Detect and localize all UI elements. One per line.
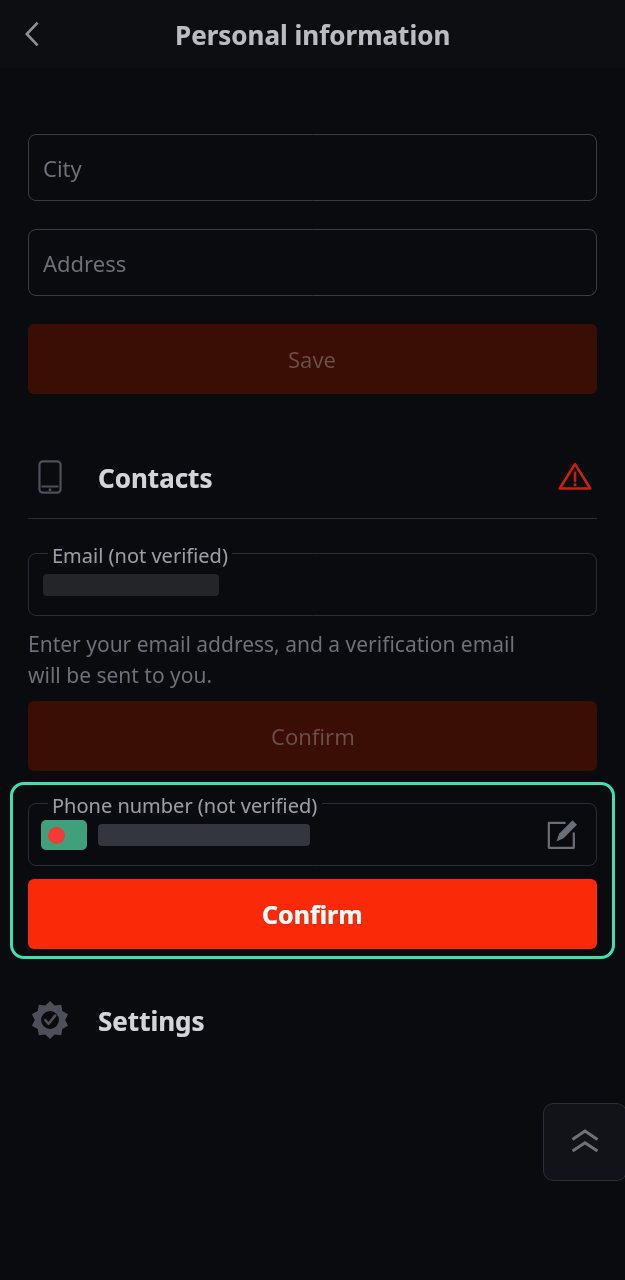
button[interactable]: Contacts — [0, 446, 625, 508]
staticText: Enter your email address, and a verifica… — [28, 630, 515, 689]
staticText: Address — [43, 248, 127, 278]
button[interactable]: City — [28, 134, 597, 201]
button[interactable]: Save — [28, 324, 597, 394]
button[interactable]: Edit phone number — [539, 813, 583, 857]
button[interactable]: Address — [28, 229, 597, 296]
button[interactable]: Edit phone number — [28, 803, 597, 866]
staticText: Contacts — [98, 460, 213, 495]
button[interactable]: Confirm — [28, 879, 597, 949]
staticText: Settings — [98, 1003, 205, 1038]
button[interactable]: Scroll to top — [543, 1103, 625, 1181]
staticText: Email (not verified) — [52, 542, 228, 569]
button[interactable]: Confirm — [28, 701, 597, 771]
staticText: Personal information — [175, 17, 451, 52]
staticText: Phone number (not verified) — [52, 792, 318, 819]
button[interactable]: Settings — [0, 989, 625, 1051]
button[interactable]: Warning — [553, 455, 597, 499]
staticText: Confirm — [271, 721, 355, 751]
button[interactable] — [28, 553, 597, 616]
staticText: Save — [288, 344, 337, 374]
staticText: Confirm — [262, 897, 363, 931]
button[interactable]: Back — [6, 8, 58, 60]
staticText: City — [43, 153, 82, 183]
